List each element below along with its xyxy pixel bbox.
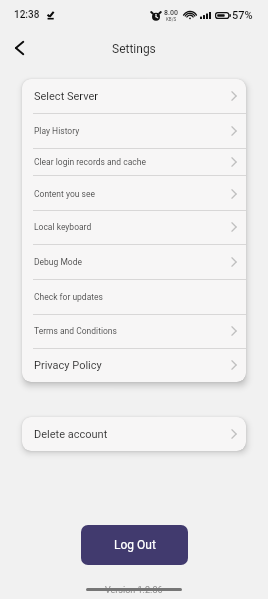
button[interactable]: Play History [22,113,246,148]
staticText: Select Server [34,90,231,103]
button[interactable]: Clear login records and cache [22,148,246,175]
staticText: Terms and Conditions [34,326,231,336]
button[interactable]: Delete account [22,417,246,451]
staticText: Check for updates [34,292,237,302]
staticText: Log Out [114,538,156,552]
staticText: Clear login records and cache [34,157,231,167]
button[interactable]: Debug Mode [22,244,246,279]
staticText: Settings [112,42,156,56]
staticText: 57% [232,9,253,22]
button[interactable]: Terms and Conditions [22,314,246,348]
button[interactable]: Privacy Policy [22,348,246,382]
button[interactable]: Back [3,32,35,64]
button[interactable]: Check for updates [22,279,246,314]
button[interactable]: Log Out [81,525,188,565]
staticText: Local keyboard [34,222,231,232]
staticText: 12:38 [14,9,40,21]
button[interactable]: Local keyboard [22,210,246,244]
staticText: Version 1.2.86 [105,585,163,596]
staticText: Content you see [34,189,231,199]
staticText: Delete account [34,428,231,441]
staticText: KB/S [166,17,177,22]
staticText: Debug Mode [34,257,231,267]
staticText: 8.00 [164,9,178,17]
button[interactable]: Select Server [22,79,246,113]
staticText: Play History [34,126,231,136]
staticText: Privacy Policy [34,359,231,372]
button[interactable]: Content you see [22,176,246,211]
